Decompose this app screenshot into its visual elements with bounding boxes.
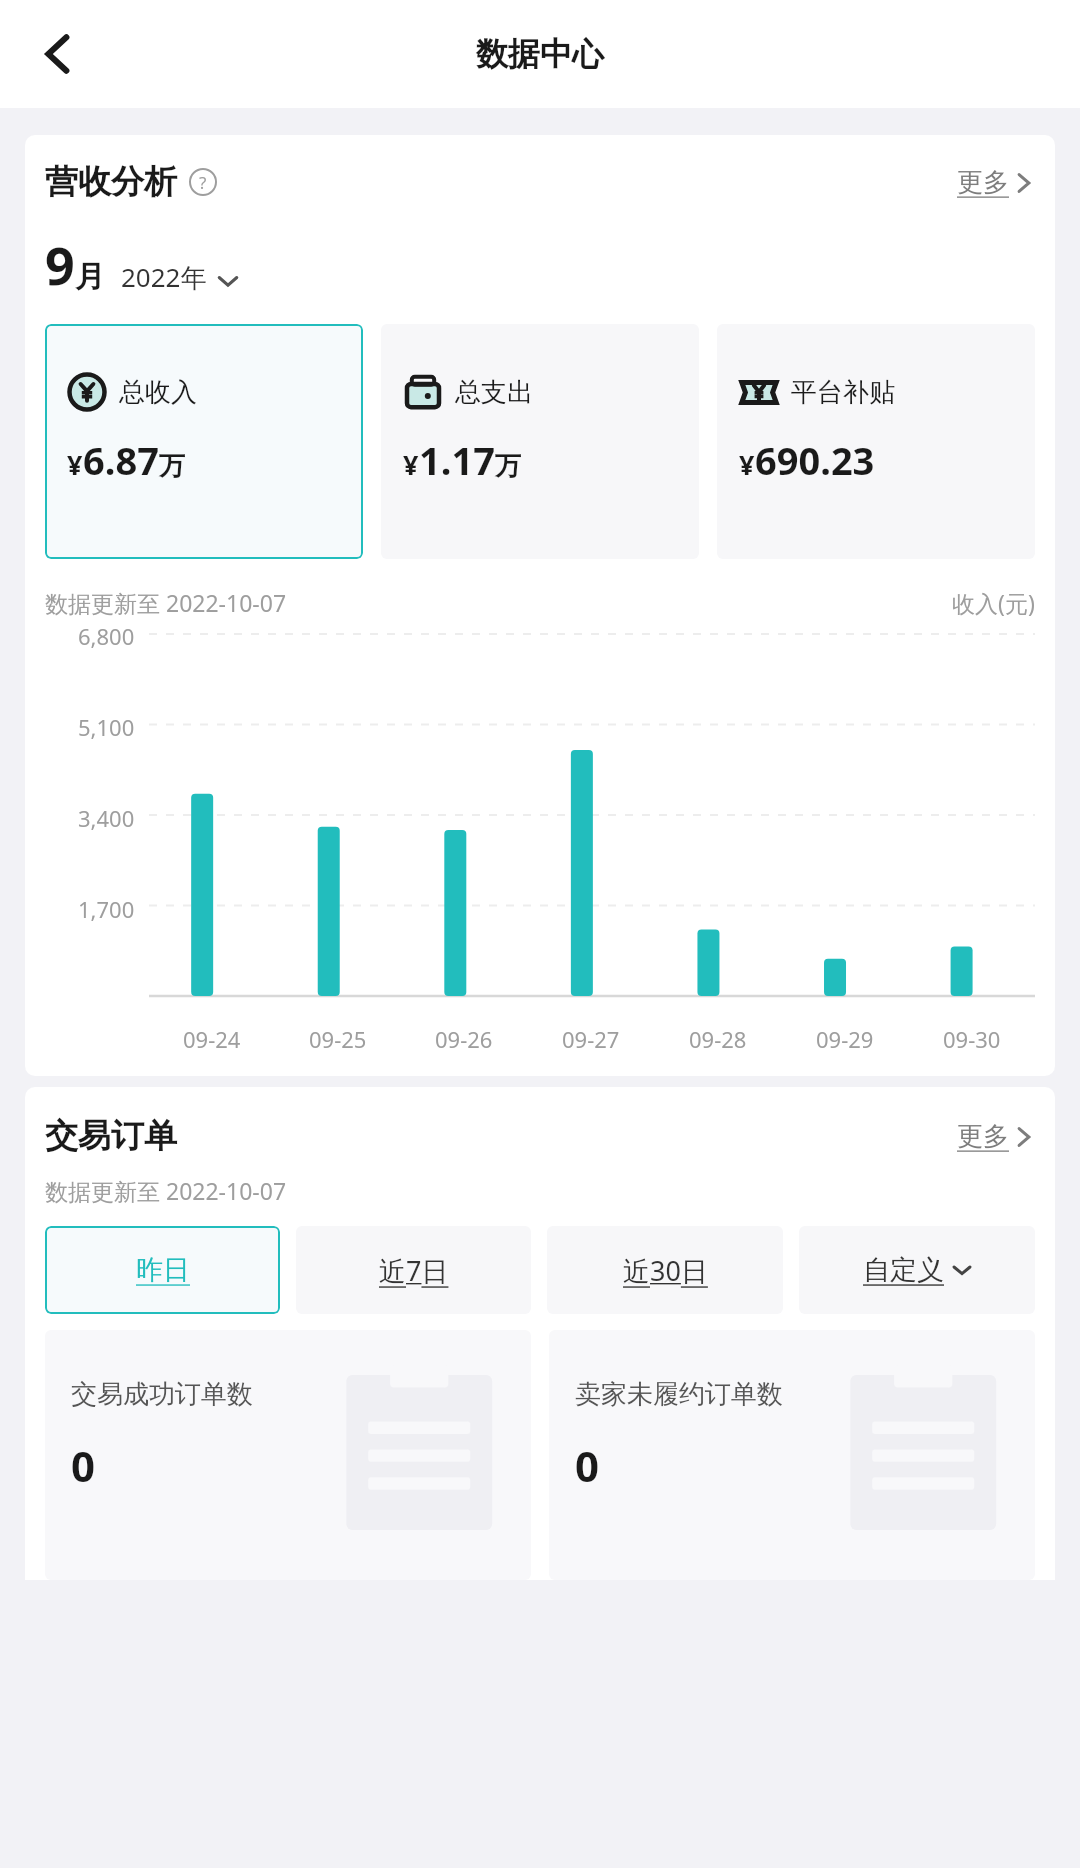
staticText: 收入(元) [952,587,1035,618]
staticText: 更多 [957,166,1009,199]
button[interactable]: 平台补贴 [717,324,1035,559]
button[interactable]: 更多 [953,162,1035,203]
staticText: 近7日 [379,1252,449,1289]
button[interactable]: 交易成功订单数 [45,1330,531,1580]
staticText: 交易订单 [45,1115,177,1157]
staticText: 09-27 [562,1024,620,1054]
staticText: 6.87 [83,434,159,486]
staticText: 更多 [957,1120,1009,1153]
staticText: 交易成功订单数 [71,1378,253,1411]
button[interactable]: 总支出 [381,324,699,559]
staticText: 数据更新至 2022-10-07 [45,1175,287,1206]
staticText: 营收分析 [45,161,177,203]
staticText: 09-28 [689,1024,747,1054]
staticText: 09-25 [309,1024,367,1054]
staticText: 万 [495,450,521,483]
staticText: ? [199,171,207,194]
staticText: 昨日 [136,1253,190,1287]
button[interactable]: 昨日 [45,1226,280,1314]
button[interactable]: 卖家未履约订单数 [549,1330,1035,1580]
staticText: 09-24 [183,1024,241,1054]
staticText: 09-26 [435,1024,493,1054]
button[interactable]: 更多 [953,1116,1035,1157]
staticText: 9 [45,229,75,300]
staticText: 数据中心 [476,34,604,74]
staticText: 数据更新至 2022-10-07 [45,587,287,618]
button[interactable]: 自定义 [799,1226,1035,1314]
button[interactable]: 帮助 [189,168,217,196]
button[interactable]: 近7日 [296,1226,531,1314]
staticText: 月 [75,258,105,296]
staticText: 2022年 [121,259,207,295]
staticText: 690.23 [755,434,875,486]
staticText: 5,100 [78,712,135,742]
staticText: 1.17 [419,434,495,486]
staticText: 近30日 [623,1252,708,1289]
button[interactable]: 近30日 [547,1226,783,1314]
staticText: 1,700 [78,894,135,924]
staticText: 0 [71,1437,96,1494]
staticText: 卖家未履约订单数 [575,1378,783,1411]
button[interactable]: 总收入 [45,324,363,559]
staticText: 自定义 [863,1253,944,1287]
staticText: ¥ [67,446,83,483]
staticText: 09-30 [943,1024,1001,1054]
button[interactable]: Back [20,16,96,92]
staticText: 总支出 [455,376,533,409]
button[interactable]: 9 [45,229,239,300]
staticText: 3,400 [78,803,135,833]
staticText: 6,800 [78,621,135,651]
staticText: 09-29 [816,1024,874,1054]
staticText: 总收入 [119,376,197,409]
staticText: ¥ [739,446,755,483]
staticText: ¥ [403,446,419,483]
staticText: 0 [575,1437,600,1494]
staticText: 平台补贴 [791,376,895,409]
staticText: 万 [159,450,185,483]
